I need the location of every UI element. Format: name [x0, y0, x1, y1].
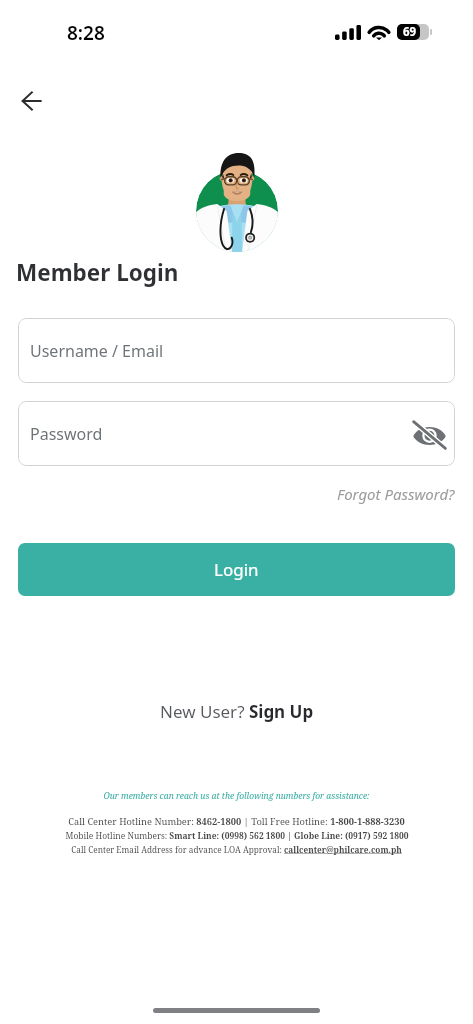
- button[interactable]: Login: [18, 543, 455, 596]
- staticText: New User? Sign Up: [160, 700, 314, 723]
- staticText: Forgot Password?: [337, 484, 455, 504]
- staticText: Password: [30, 423, 103, 445]
- button[interactable]: Username / Email: [18, 318, 455, 383]
- button[interactable]: Password: [18, 401, 455, 466]
- staticText: Member Login: [16, 257, 179, 288]
- staticText: Mobile Hotline Numbers: Smart Line: (099…: [65, 830, 409, 842]
- button[interactable]: Forgot Password?: [325, 479, 473, 509]
- staticText: Call Center Email Address for advance LO…: [71, 844, 402, 855]
- staticText: Call Center Hotline Number: 8462-1800 | …: [68, 815, 405, 828]
- staticText: Login: [214, 558, 259, 581]
- button[interactable]: Show password: [407, 414, 451, 454]
- button[interactable]: Back: [12, 82, 50, 120]
- staticText: Our members can reach us at the followin…: [103, 790, 370, 802]
- staticText: Username / Email: [30, 340, 164, 362]
- button[interactable]: New User? Sign Up: [152, 695, 322, 728]
- staticText: 69: [403, 24, 417, 40]
- staticText: 8:28: [67, 20, 105, 46]
